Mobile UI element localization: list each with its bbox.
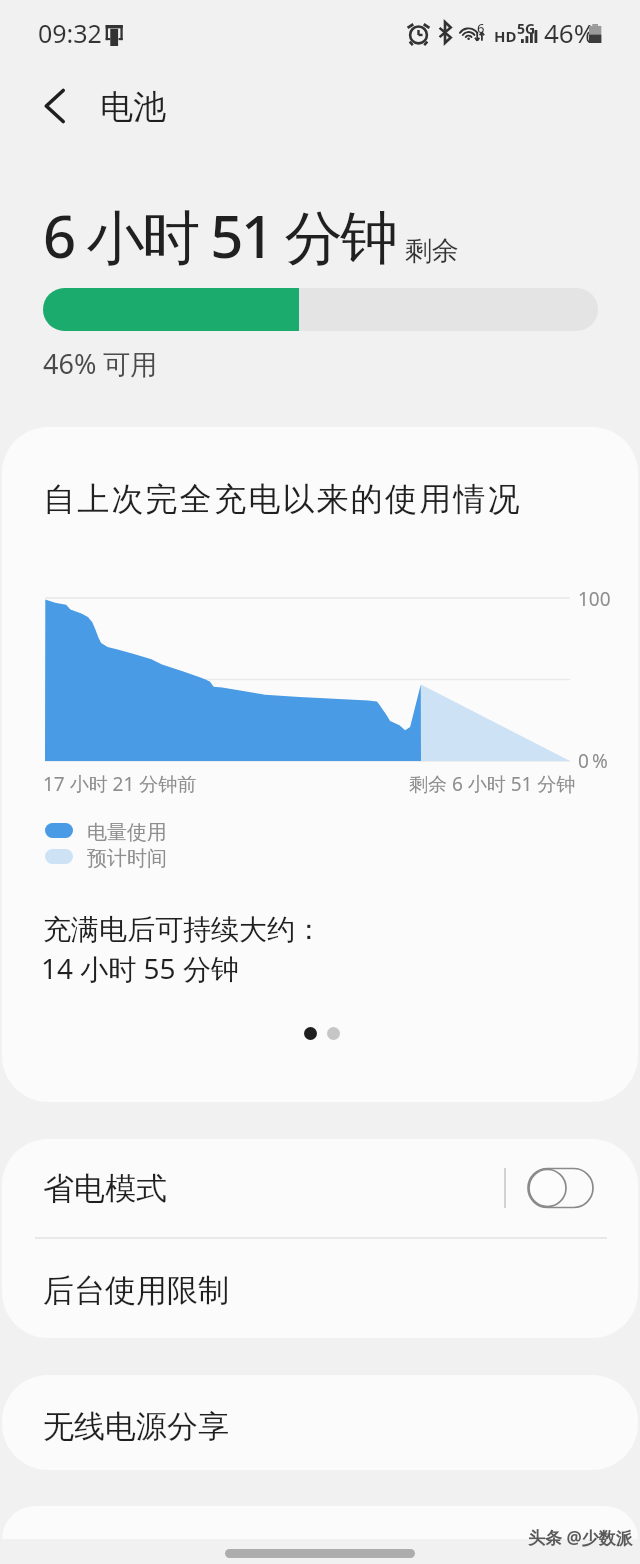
staticText: 0 % xyxy=(578,748,608,774)
staticText: 头条 @少数派 xyxy=(528,1526,633,1549)
staticText: HD xyxy=(494,26,517,46)
staticText: 充满电后可持续大约： xyxy=(43,912,323,947)
staticText: 17 小时 21 分钟前 xyxy=(43,771,197,797)
staticText: 剩余 xyxy=(405,234,459,268)
staticText: 100 xyxy=(578,586,611,612)
button[interactable]: 后台使用限制 xyxy=(2,1239,638,1338)
staticText: 6 小时 51 分钟 xyxy=(43,196,396,275)
button[interactable]: Power saving mode toggle xyxy=(526,1163,601,1213)
button[interactable]: 无线电源分享 xyxy=(2,1375,638,1470)
staticText: 46% xyxy=(544,15,596,50)
staticText: 电池 xyxy=(100,86,166,128)
staticText: 自上次完全充电以来的使用情况 xyxy=(43,479,522,519)
staticText: 省电模式 xyxy=(43,1169,167,1208)
staticText: 6 xyxy=(477,19,485,37)
staticText: 剩余 6 小时 51 分钟 xyxy=(409,771,576,797)
staticText: 预计时间 xyxy=(87,846,167,871)
staticText: 后台使用限制 xyxy=(43,1271,229,1310)
staticText: 14 小时 55 分钟 xyxy=(41,949,239,987)
staticText: 09:32 xyxy=(38,16,102,50)
staticText: 无线电源分享 xyxy=(43,1407,229,1446)
staticText: 5G xyxy=(517,19,536,38)
staticText: 46% 可用 xyxy=(43,345,158,382)
staticText: 电量使用 xyxy=(87,820,167,845)
button[interactable]: Back xyxy=(30,80,82,132)
button[interactable]: 省电模式 xyxy=(2,1139,638,1237)
